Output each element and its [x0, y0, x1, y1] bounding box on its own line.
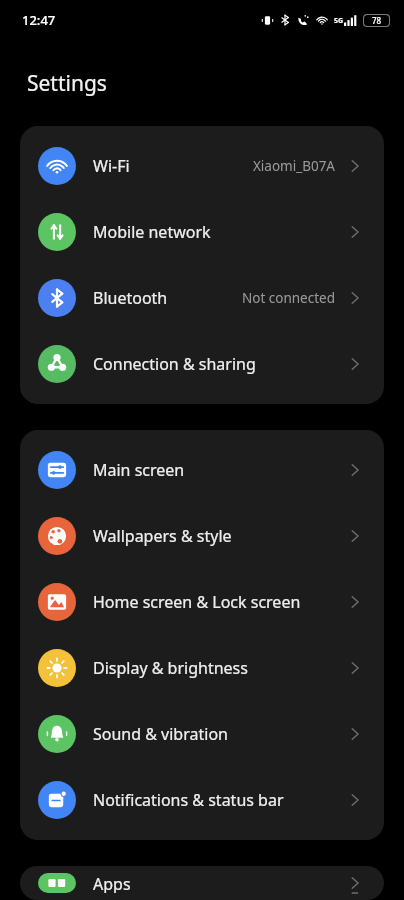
- button[interactable]: Apps: [20, 873, 384, 893]
- staticText: Connection & sharing: [93, 353, 256, 375]
- button[interactable]: Wi-Fi: [20, 133, 384, 199]
- button[interactable]: Connection & sharing: [20, 331, 384, 397]
- staticText: Settings: [27, 69, 107, 98]
- staticText: Sound & vibration: [93, 723, 228, 745]
- staticText: 78: [372, 15, 382, 26]
- staticText: 5G: [334, 16, 344, 26]
- staticText: Bluetooth: [93, 287, 168, 309]
- staticText: Wi-Fi: [93, 155, 130, 177]
- button[interactable]: Main screen: [20, 437, 384, 503]
- button[interactable]: Notifications & status bar: [20, 767, 384, 833]
- button[interactable]: Home screen & Lock screen: [20, 569, 384, 635]
- staticText: Wallpapers & style: [93, 525, 232, 547]
- button[interactable]: Mobile network: [20, 199, 384, 265]
- button[interactable]: Bluetooth: [20, 265, 384, 331]
- button[interactable]: Wallpapers & style: [20, 503, 384, 569]
- staticText: Display & brightness: [93, 657, 248, 679]
- staticText: Home screen & Lock screen: [93, 591, 301, 613]
- staticText: Apps: [93, 873, 131, 893]
- staticText: Notifications & status bar: [93, 789, 284, 811]
- button[interactable]: Display & brightness: [20, 635, 384, 701]
- staticText: Mobile network: [93, 221, 211, 243]
- staticText: 12:47: [22, 11, 56, 29]
- staticText: Xiaomi_B07A: [252, 157, 335, 175]
- staticText: Main screen: [93, 459, 185, 481]
- button[interactable]: Sound & vibration: [20, 701, 384, 767]
- staticText: Not connected: [241, 289, 335, 307]
